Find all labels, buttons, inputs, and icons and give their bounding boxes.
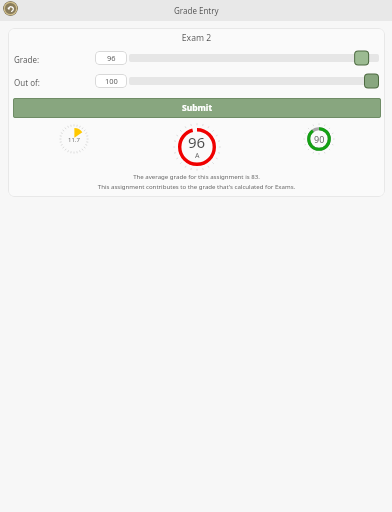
- staticText: Grade Entry: [174, 5, 219, 16]
- staticText: Exam 2: [8, 32, 385, 44]
- staticText: 96: [188, 132, 206, 152]
- staticText: Out of:: [14, 77, 40, 88]
- button[interactable]: [129, 50, 379, 66]
- staticText: 90: [314, 133, 325, 145]
- staticText: 96: [107, 53, 116, 63]
- button[interactable]: 100: [95, 74, 127, 88]
- button[interactable]: 96: [95, 51, 127, 65]
- staticText: 11.7: [68, 136, 80, 144]
- staticText: The average grade for this assignment is…: [8, 172, 385, 180]
- button[interactable]: [129, 73, 379, 89]
- button[interactable]: Back: [3, 1, 18, 16]
- button[interactable]: Submit: [13, 98, 381, 118]
- staticText: This assignment contributes to the grade…: [8, 182, 385, 190]
- staticText: Submit: [182, 102, 213, 114]
- staticText: 100: [105, 76, 118, 86]
- staticText: A: [195, 151, 200, 161]
- staticText: Grade:: [14, 54, 40, 65]
